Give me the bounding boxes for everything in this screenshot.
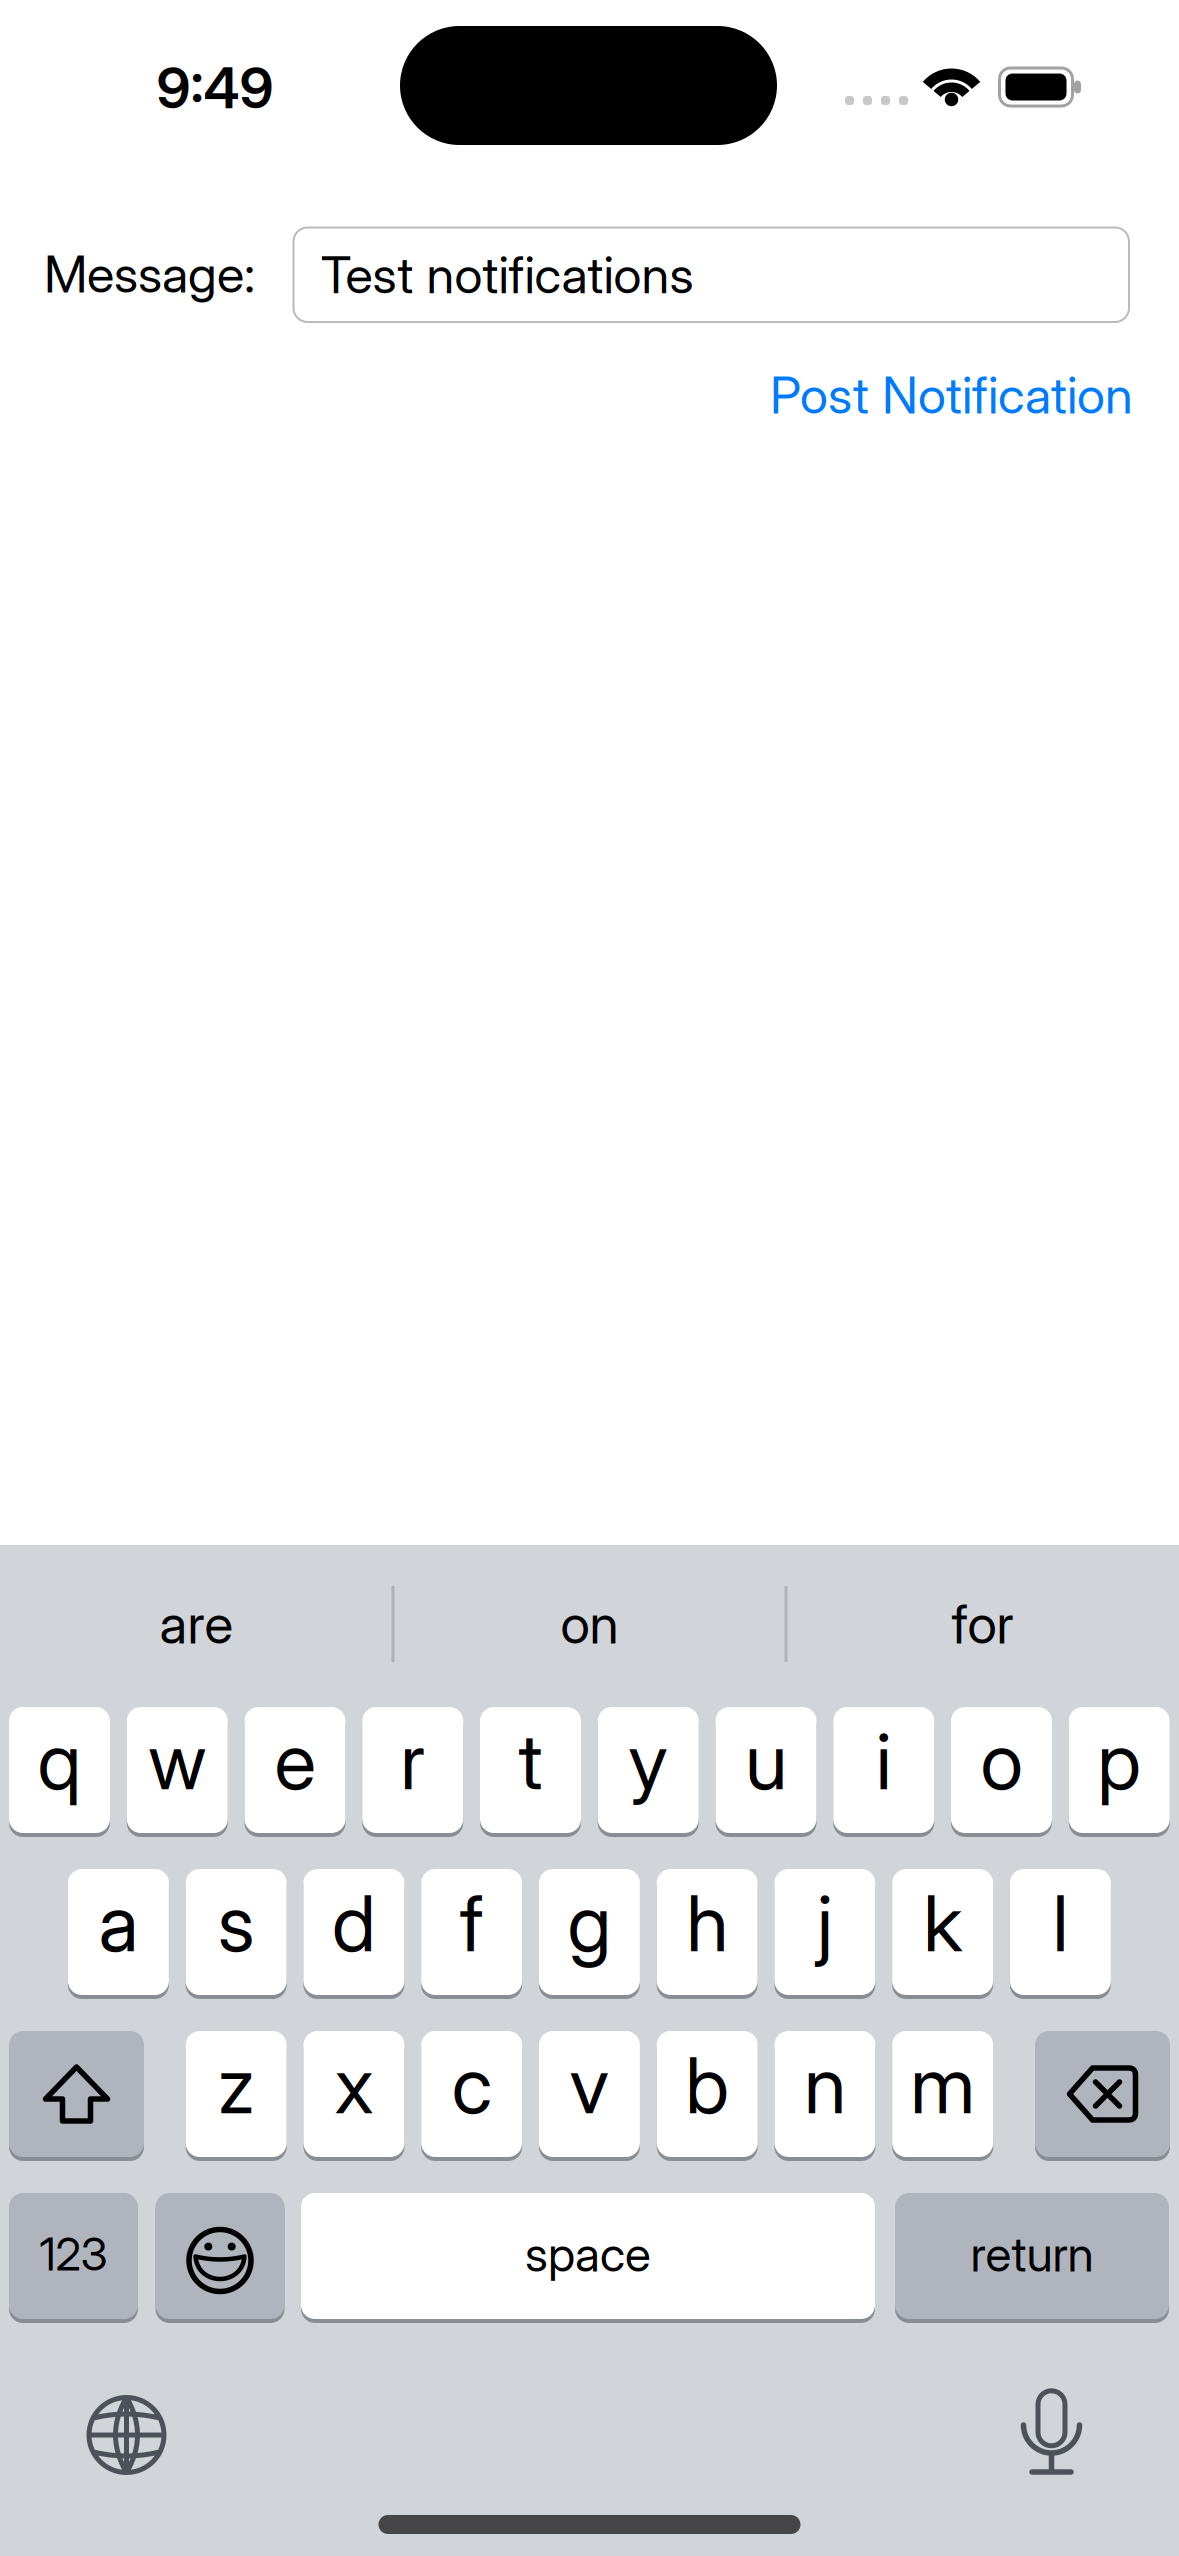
- staticText: j: [817, 1877, 833, 1969]
- button[interactable]: k: [892, 1869, 993, 1995]
- button[interactable]: space: [301, 2193, 875, 2319]
- staticText: k: [923, 1877, 962, 1969]
- staticText: x: [334, 2039, 373, 2131]
- staticText: for: [951, 1592, 1013, 1655]
- staticText: are: [159, 1592, 233, 1655]
- button[interactable]: q: [9, 1707, 110, 1833]
- button[interactable]: Emoji: [155, 2193, 284, 2319]
- button[interactable]: m: [892, 2031, 993, 2157]
- staticText: Post Notification: [770, 365, 1133, 425]
- button[interactable]: b: [657, 2031, 758, 2157]
- staticText: y: [628, 1715, 668, 1807]
- staticText: on: [560, 1592, 618, 1655]
- button[interactable]: Shift: [9, 2031, 144, 2157]
- staticText: 9:49: [156, 55, 273, 121]
- staticText: e: [274, 1715, 315, 1807]
- button[interactable]: Dictation: [996, 2379, 1106, 2489]
- button[interactable]: Test notifications: [293, 227, 1129, 322]
- staticText: d: [332, 1877, 376, 1969]
- button[interactable]: i: [833, 1707, 934, 1833]
- staticText: space: [525, 2226, 651, 2282]
- staticText: i: [876, 1715, 892, 1807]
- button[interactable]: s: [186, 1869, 287, 1995]
- button[interactable]: y: [598, 1707, 699, 1833]
- staticText: 123: [39, 2227, 107, 2281]
- staticText: m: [910, 2039, 975, 2131]
- button[interactable]: w: [127, 1707, 228, 1833]
- button[interactable]: t: [480, 1707, 581, 1833]
- staticText: q: [37, 1715, 81, 1807]
- staticText: w: [148, 1715, 206, 1807]
- staticText: v: [569, 2039, 609, 2131]
- staticText: s: [218, 1877, 255, 1969]
- staticText: t: [518, 1715, 542, 1807]
- button[interactable]: 123: [9, 2193, 138, 2319]
- staticText: h: [686, 1877, 728, 1969]
- button[interactable]: Post Notification: [770, 365, 1133, 425]
- button[interactable]: e: [244, 1707, 345, 1833]
- button[interactable]: z: [186, 2031, 287, 2157]
- button[interactable]: d: [303, 1869, 404, 1995]
- staticText: n: [804, 2039, 846, 2131]
- button[interactable]: c: [421, 2031, 522, 2157]
- button[interactable]: u: [715, 1707, 816, 1833]
- button[interactable]: v: [539, 2031, 640, 2157]
- button[interactable]: Next keyboard: [76, 2385, 176, 2485]
- staticText: l: [1052, 1877, 1068, 1969]
- staticText: a: [98, 1877, 138, 1969]
- staticText: c: [452, 2039, 492, 2131]
- staticText: Test notifications: [320, 245, 693, 305]
- button[interactable]: f: [421, 1869, 522, 1995]
- staticText: f: [460, 1877, 484, 1969]
- staticText: p: [1097, 1715, 1141, 1807]
- button[interactable]: p: [1069, 1707, 1170, 1833]
- staticText: r: [400, 1715, 425, 1807]
- staticText: z: [218, 2039, 255, 2131]
- button[interactable]: j: [774, 1869, 875, 1995]
- button[interactable]: o: [951, 1707, 1052, 1833]
- button[interactable]: x: [303, 2031, 404, 2157]
- button[interactable]: return: [895, 2193, 1169, 2319]
- staticText: u: [745, 1715, 787, 1807]
- staticText: b: [685, 2039, 729, 2131]
- button[interactable]: are: [6, 1569, 386, 1679]
- staticText: o: [980, 1715, 1022, 1807]
- button[interactable]: for: [792, 1569, 1172, 1679]
- staticText: g: [567, 1877, 611, 1969]
- button[interactable]: g: [539, 1869, 640, 1995]
- button[interactable]: r: [362, 1707, 463, 1833]
- button[interactable]: a: [68, 1869, 169, 1995]
- button[interactable]: on: [399, 1569, 779, 1679]
- staticText: return: [970, 2226, 1093, 2282]
- button[interactable]: n: [774, 2031, 875, 2157]
- button[interactable]: h: [657, 1869, 758, 1995]
- button[interactable]: l: [1010, 1869, 1111, 1995]
- button[interactable]: Delete: [1035, 2031, 1170, 2157]
- staticText: Message:: [44, 244, 255, 304]
